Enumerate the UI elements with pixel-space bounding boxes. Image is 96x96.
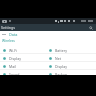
button[interactable]: Display <box>46 62 96 70</box>
staticText: Settings <box>1 25 16 30</box>
staticText: Battery <box>55 48 67 53</box>
button[interactable]: Sound <box>0 70 46 75</box>
staticText: Mail <box>9 64 16 69</box>
staticText: Wireless <box>2 38 15 42</box>
button[interactable]: Display <box>0 54 46 62</box>
button[interactable]: Mail <box>0 62 46 70</box>
staticText: Wi-Fi <box>9 48 18 53</box>
button[interactable]: Backup <box>46 70 96 75</box>
staticText: Display <box>55 64 67 69</box>
staticText: Sound <box>9 72 20 75</box>
button[interactable]: Net <box>46 54 96 62</box>
staticText: Data <box>9 32 18 37</box>
button[interactable]: Search <box>87 24 94 31</box>
staticText: Display <box>9 56 21 61</box>
button[interactable]: Battery <box>46 46 96 54</box>
staticText: Net <box>55 56 61 61</box>
button[interactable]: Wi-Fi <box>0 46 46 54</box>
staticText: Backup <box>55 72 68 75</box>
button[interactable]: Data <box>0 31 46 37</box>
